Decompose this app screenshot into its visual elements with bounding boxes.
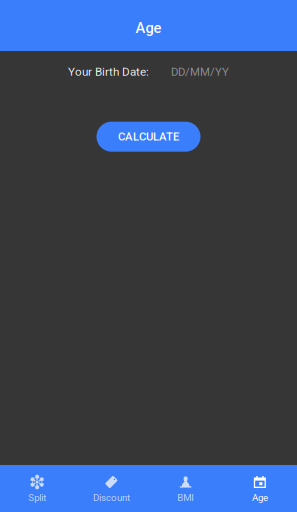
button[interactable]: Split xyxy=(0,465,74,512)
staticText: Split xyxy=(28,492,46,503)
staticText: Your Birth Date: xyxy=(68,65,149,79)
staticText: BMI xyxy=(177,492,194,503)
button[interactable]: Discount xyxy=(74,465,148,512)
button[interactable]: BMI xyxy=(148,465,223,512)
staticText: Discount xyxy=(93,492,130,503)
staticText: DD/MM/YY xyxy=(171,65,229,78)
button[interactable]: DD/MM/YY xyxy=(171,65,229,78)
button[interactable]: Age xyxy=(223,465,297,512)
button[interactable]: CALCULATE xyxy=(96,122,200,152)
staticText: Age xyxy=(135,19,161,37)
staticText: CALCULATE xyxy=(118,130,179,143)
staticText: Age xyxy=(252,492,268,503)
